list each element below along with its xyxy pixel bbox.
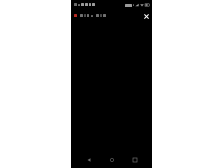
button[interactable]: Recent apps bbox=[127, 152, 143, 168]
button[interactable] bbox=[74, 14, 89, 17]
button[interactable] bbox=[91, 14, 106, 17]
button[interactable]: Back bbox=[81, 152, 97, 168]
button[interactable]: Close bbox=[141, 11, 151, 21]
button[interactable]: Home bbox=[104, 152, 120, 168]
